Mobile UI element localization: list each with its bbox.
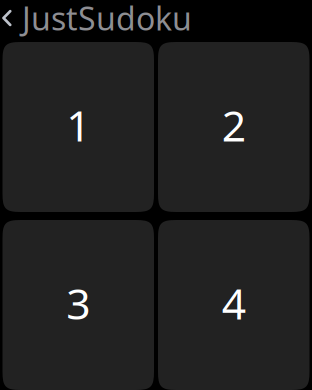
- button[interactable]: 3: [2, 220, 154, 390]
- button[interactable]: 1: [2, 42, 154, 212]
- staticText: JustSudoku: [22, 0, 192, 39]
- staticText: 2: [222, 97, 246, 153]
- button[interactable]: JustSudoku: [0, 0, 312, 36]
- button[interactable]: 4: [158, 220, 309, 390]
- button[interactable]: 2: [158, 42, 309, 212]
- staticText: 1: [66, 97, 90, 153]
- staticText: 3: [66, 275, 90, 331]
- staticText: 4: [222, 275, 246, 331]
